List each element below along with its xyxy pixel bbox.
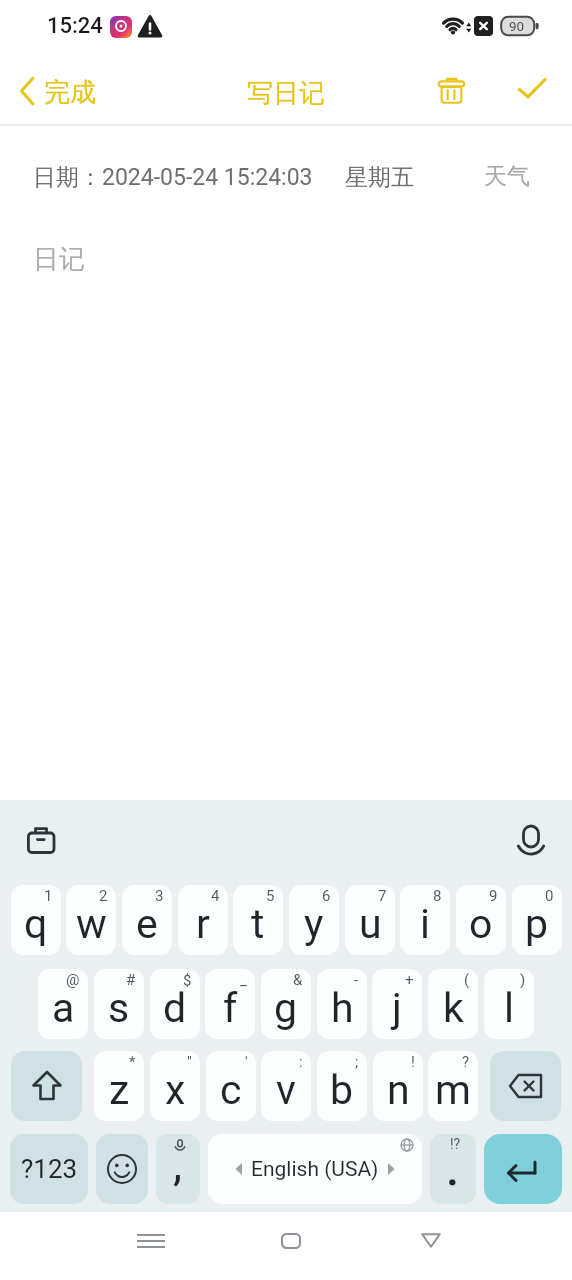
staticText: i: [420, 900, 430, 948]
staticText: 完成: [44, 76, 96, 109]
staticText: 天气: [484, 162, 530, 191]
staticText: 2: [99, 887, 108, 905]
button[interactable]: 完成: [10, 66, 110, 116]
staticText: English (USA): [251, 1157, 379, 1182]
button[interactable]: b: [317, 1051, 367, 1121]
button[interactable]: l: [484, 969, 534, 1039]
button[interactable]: w: [66, 885, 116, 955]
staticText: n: [387, 1066, 410, 1114]
staticText: .: [445, 1134, 461, 1199]
staticText: 日期：2024-05-24 15:24:03: [33, 163, 313, 192]
staticText: $: [183, 971, 192, 989]
staticText: v: [276, 1066, 296, 1114]
staticText: 0: [545, 887, 554, 905]
button[interactable]: t: [233, 885, 283, 955]
button[interactable]: [403, 1218, 459, 1264]
button[interactable]: ,: [156, 1134, 200, 1204]
button[interactable]: [484, 1134, 562, 1204]
button[interactable]: v: [261, 1051, 311, 1121]
staticText: b: [330, 1066, 354, 1114]
staticText: :: [299, 1053, 303, 1071]
button[interactable]: .: [430, 1134, 476, 1204]
staticText: k: [443, 984, 464, 1032]
staticText: _: [240, 971, 247, 989]
button[interactable]: f: [205, 969, 255, 1039]
button[interactable]: u: [345, 885, 395, 955]
staticText: g: [274, 984, 298, 1032]
button[interactable]: y: [289, 885, 339, 955]
button[interactable]: [14, 814, 66, 866]
staticText: *: [129, 1053, 136, 1071]
button[interactable]: s: [94, 969, 144, 1039]
staticText: u: [359, 900, 382, 948]
staticText: 6: [322, 887, 331, 905]
staticText: a: [52, 984, 75, 1032]
staticText: 星期五: [345, 163, 414, 192]
button[interactable]: o: [456, 885, 506, 955]
button[interactable]: d: [150, 969, 200, 1039]
staticText: !?: [450, 1136, 461, 1152]
staticText: ): [520, 971, 526, 989]
button[interactable]: [505, 66, 561, 116]
button[interactable]: [123, 1218, 179, 1264]
button[interactable]: j: [372, 969, 422, 1039]
button[interactable]: a: [38, 969, 88, 1039]
staticText: !: [411, 1053, 415, 1071]
button[interactable]: i: [400, 885, 450, 955]
button[interactable]: 天气: [475, 157, 539, 195]
button[interactable]: r: [178, 885, 228, 955]
staticText: (: [464, 971, 470, 989]
button[interactable]: m: [428, 1051, 478, 1121]
staticText: z: [109, 1066, 130, 1114]
button[interactable]: k: [428, 969, 478, 1039]
staticText: 9: [489, 887, 498, 905]
staticText: o: [469, 900, 493, 948]
staticText: ;: [355, 1053, 359, 1071]
staticText: ?: [462, 1053, 470, 1071]
button[interactable]: e: [122, 885, 172, 955]
button[interactable]: [428, 64, 478, 116]
staticText: j: [392, 984, 402, 1032]
staticText: 3: [155, 887, 164, 905]
staticText: 日记: [33, 243, 85, 276]
staticText: @: [66, 971, 80, 989]
staticText: 4: [211, 887, 220, 905]
button[interactable]: c: [206, 1051, 256, 1121]
button[interactable]: h: [317, 969, 367, 1039]
staticText: #: [126, 971, 136, 989]
staticText: s: [108, 984, 130, 1032]
staticText: 15:24: [47, 13, 103, 39]
button[interactable]: [11, 1051, 82, 1121]
staticText: l: [504, 984, 514, 1032]
button[interactable]: z: [94, 1051, 144, 1121]
button[interactable]: x: [150, 1051, 200, 1121]
staticText: 写日记: [247, 77, 325, 110]
staticText: w: [76, 900, 107, 948]
staticText: c: [220, 1066, 242, 1114]
button[interactable]: [504, 812, 560, 868]
staticText: ': [245, 1053, 248, 1071]
staticText: +: [405, 971, 414, 989]
button[interactable]: p: [512, 885, 562, 955]
button[interactable]: g: [261, 969, 311, 1039]
button[interactable]: [96, 1134, 148, 1204]
staticText: f: [223, 984, 238, 1032]
button[interactable]: n: [373, 1051, 423, 1121]
staticText: &: [293, 971, 303, 989]
staticText: 7: [378, 887, 387, 905]
staticText: ?123: [21, 1154, 78, 1184]
button[interactable]: [490, 1051, 561, 1121]
button[interactable]: ?123: [10, 1134, 88, 1204]
staticText: 90: [509, 18, 525, 34]
button[interactable]: [263, 1218, 319, 1264]
staticText: r: [196, 900, 210, 948]
staticText: 1: [44, 887, 53, 905]
button[interactable]: English (USA): [208, 1134, 422, 1204]
staticText: 5: [266, 887, 275, 905]
staticText: m: [435, 1066, 471, 1114]
staticText: d: [163, 984, 187, 1032]
staticText: y: [304, 900, 324, 948]
staticText: e: [136, 900, 158, 948]
button[interactable]: q: [11, 885, 61, 955]
staticText: -: [354, 971, 359, 989]
